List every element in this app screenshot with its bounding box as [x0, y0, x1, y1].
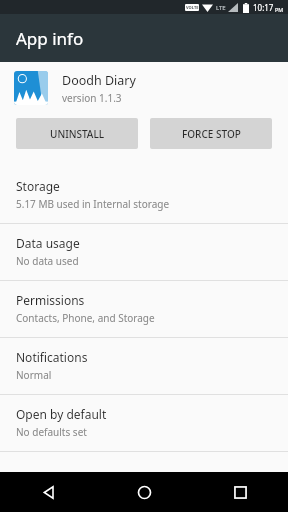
button[interactable]: Data usage: [0, 224, 288, 280]
button[interactable]: Back: [0, 472, 96, 512]
button[interactable]: Storage: [0, 167, 288, 223]
staticText: UNINSTALL: [50, 127, 105, 141]
button[interactable]: UNINSTALL: [16, 118, 138, 149]
staticText: Open by default: [16, 406, 107, 422]
staticText: PM: [275, 6, 284, 13]
staticText: Storage: [16, 178, 60, 194]
staticText: Contacts, Phone, and Storage: [16, 311, 155, 325]
button[interactable]: Recent apps: [192, 472, 288, 512]
button[interactable]: Home: [96, 472, 192, 512]
staticText: VOLTE: [186, 5, 199, 10]
button[interactable]: FORCE STOP: [150, 118, 272, 149]
button[interactable]: Open by default: [0, 395, 288, 451]
staticText: 5.17 MB used in Internal storage: [16, 197, 170, 211]
staticText: Data usage: [16, 235, 80, 251]
button[interactable]: Permissions: [0, 281, 288, 337]
staticText: FORCE STOP: [182, 127, 241, 141]
staticText: LTE: [216, 4, 226, 12]
staticText: App info: [16, 27, 84, 50]
staticText: Permissions: [16, 292, 85, 308]
staticText: version 1.1.3: [62, 91, 122, 105]
staticText: Normal: [16, 368, 52, 382]
staticText: 10:17: [253, 2, 274, 13]
staticText: Doodh Diary: [62, 72, 136, 89]
staticText: Notifications: [16, 349, 88, 365]
staticText: No defaults set: [16, 425, 87, 439]
staticText: No data used: [16, 254, 79, 268]
button[interactable]: Notifications: [0, 338, 288, 394]
